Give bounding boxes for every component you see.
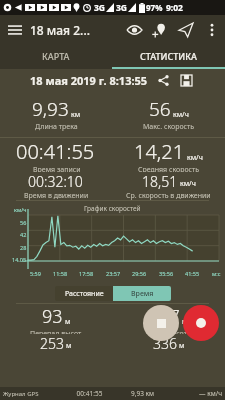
staticText: КАРТА <box>42 50 70 62</box>
button[interactable]: Share <box>154 71 172 89</box>
staticText: 9:02 <box>166 2 183 14</box>
staticText: 9,93 <box>32 96 69 122</box>
button[interactable]: More options <box>199 17 225 43</box>
button[interactable]: Navigate <box>173 17 199 43</box>
button[interactable]: Stop <box>143 305 179 341</box>
staticText: Перепад высот <box>30 329 82 334</box>
staticText: 56 <box>20 219 27 226</box>
staticText: 18 мая 2019 г. 8:13:55 <box>30 73 148 88</box>
staticText: 17:58 <box>79 270 94 277</box>
staticText: Макс. скорость <box>143 122 195 132</box>
staticText: Расстояние <box>65 289 104 299</box>
staticText: км/ч <box>187 153 203 163</box>
button[interactable]: Add marker <box>147 17 173 43</box>
staticText: 00:41:55 <box>16 138 95 165</box>
staticText: 00:41:55 <box>63 389 116 398</box>
staticText: График скоростей <box>84 204 141 213</box>
staticText: 14,21 <box>134 138 185 165</box>
staticText: СТАТИСТИКА <box>140 50 197 62</box>
staticText: 00:32:10 <box>28 172 83 191</box>
button[interactable]: Расстояние <box>55 286 113 301</box>
staticText: Время в движении <box>24 191 89 200</box>
staticText: 23:57 <box>106 270 121 277</box>
staticText: км <box>71 110 81 120</box>
staticText: — км/ч <box>169 389 222 398</box>
staticText: 18,51 <box>142 172 178 191</box>
staticText: Макс. высота <box>146 329 191 334</box>
staticText: Средняя скорость <box>138 165 200 172</box>
staticText: м <box>66 341 72 351</box>
staticText: 9,93 км <box>116 389 169 398</box>
staticText: Время записи <box>33 165 81 172</box>
button[interactable]: Record <box>183 305 219 341</box>
staticText: 41:55 <box>185 270 200 277</box>
staticText: 253 <box>40 334 64 353</box>
staticText: 336 <box>153 334 177 353</box>
staticText: м <box>179 341 185 351</box>
staticText: 42 <box>20 231 27 238</box>
staticText: км/ч <box>180 179 196 189</box>
staticText: 14.05 <box>12 256 27 263</box>
staticText: Журнал GPS <box>3 390 63 398</box>
staticText: м:с <box>212 270 221 277</box>
button[interactable]: Время <box>113 286 171 301</box>
staticText: 3G <box>94 2 106 14</box>
staticText: Время <box>131 289 154 299</box>
staticText: м <box>65 317 71 327</box>
staticText: 11:58 <box>53 270 68 277</box>
button[interactable]: СТАТИСТИКА <box>112 45 225 67</box>
staticText: 97% <box>146 2 163 13</box>
staticText: Ср. скорость в движении <box>126 191 211 200</box>
button[interactable]: Save <box>177 71 195 89</box>
staticText: км/ч <box>173 110 189 120</box>
staticText: 5:59 <box>30 270 41 277</box>
staticText: 3G <box>116 2 128 14</box>
staticText: км/ч <box>14 206 27 213</box>
button[interactable]: Menu <box>0 15 30 45</box>
staticText: 28 <box>20 244 27 251</box>
button[interactable]: 18 мая 2... <box>30 22 90 38</box>
staticText: Длина трека <box>35 122 78 132</box>
staticText: м <box>182 317 188 327</box>
button[interactable]: КАРТА <box>0 45 112 67</box>
staticText: 29:56 <box>132 270 147 277</box>
staticText: 56 <box>149 96 171 122</box>
staticText: 35:56 <box>159 270 174 277</box>
staticText: 93 <box>42 304 63 329</box>
staticText: 167 <box>149 304 180 329</box>
button[interactable]: Show <box>121 17 147 43</box>
